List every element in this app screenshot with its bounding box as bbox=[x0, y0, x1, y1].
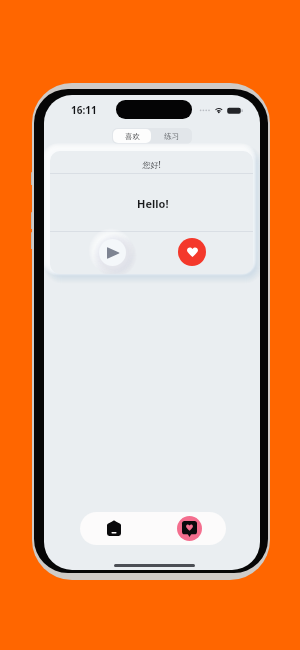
button[interactable]: Home bbox=[80, 512, 152, 545]
staticText: 喜欢 bbox=[125, 132, 140, 141]
staticText: 练习 bbox=[164, 132, 179, 141]
button[interactable]: 练习 bbox=[151, 129, 191, 143]
button[interactable]: Favorite bbox=[178, 238, 206, 266]
staticText: Hello! bbox=[137, 196, 169, 211]
button[interactable]: 喜欢 bbox=[113, 129, 151, 143]
staticText: 16:11 bbox=[71, 103, 97, 117]
button[interactable]: Favorites bbox=[153, 512, 226, 545]
staticText: 您好! bbox=[142, 159, 161, 170]
button[interactable]: Play bbox=[99, 239, 126, 266]
